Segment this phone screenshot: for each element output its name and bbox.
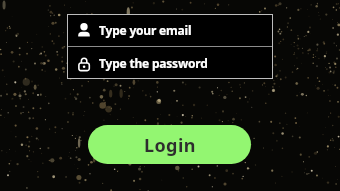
button[interactable]: Type the password bbox=[67, 47, 273, 79]
staticText: Type the password bbox=[99, 55, 208, 71]
staticText: Type your email bbox=[99, 22, 192, 38]
button[interactable]: Login bbox=[88, 125, 251, 164]
staticText: Login bbox=[144, 133, 196, 158]
button[interactable]: Type your email bbox=[67, 14, 273, 46]
